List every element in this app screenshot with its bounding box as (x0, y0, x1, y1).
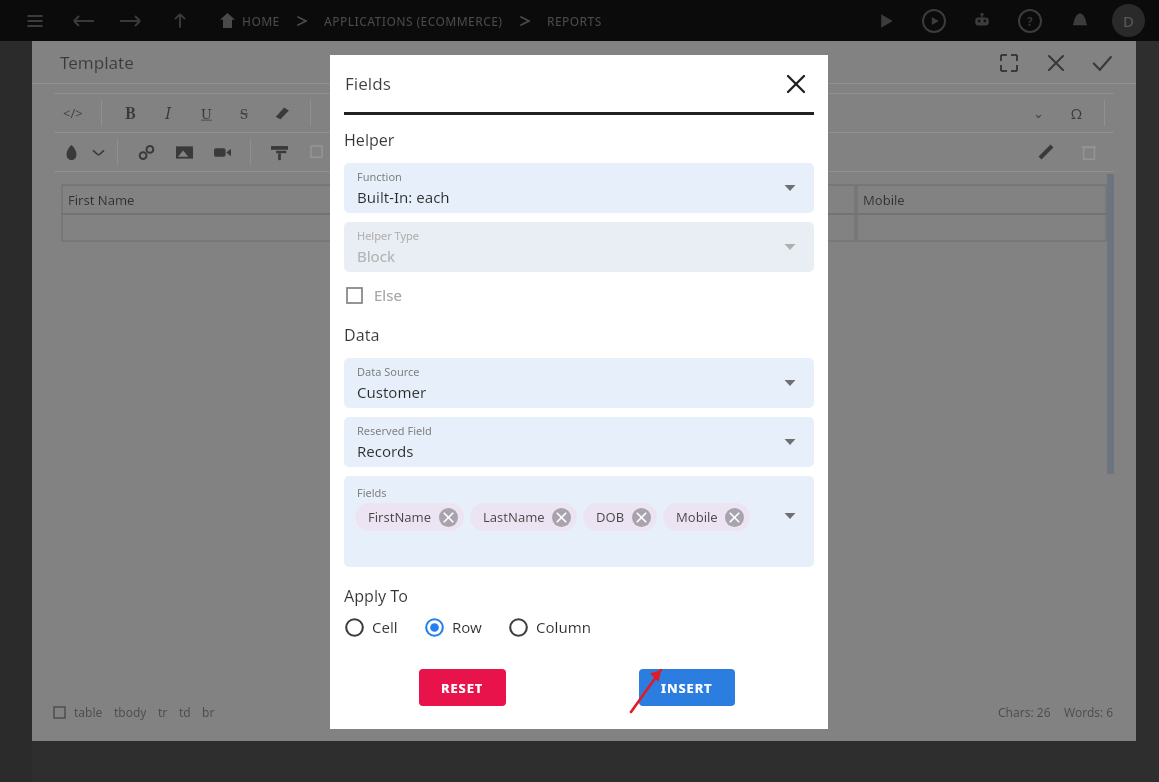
button[interactable]: Reserved Field (344, 417, 814, 467)
button[interactable]: Remove Mobile (725, 508, 744, 527)
button[interactable]: Clear format (263, 96, 301, 130)
staticText: Last Name (361, 191, 427, 209)
button[interactable]: Menu (22, 8, 48, 34)
button[interactable]: Function (344, 163, 814, 213)
staticText: Fields (357, 485, 387, 500)
staticText: Words: 6 (1064, 704, 1114, 720)
staticText: Helper Type (357, 228, 420, 243)
button[interactable]: Fields (344, 476, 814, 567)
button[interactable]: Play video (922, 9, 946, 33)
staticText: Row (452, 617, 482, 637)
button[interactable]: </> (54, 96, 92, 130)
button[interactable]: Remove DOB (632, 508, 651, 527)
staticText: Function (357, 169, 402, 184)
staticText: DOB (596, 508, 625, 526)
button[interactable]: Close dialog (784, 72, 808, 96)
staticText: Helper (344, 129, 395, 151)
staticText: HOME (242, 13, 280, 29)
button[interactable]: Ω (1057, 96, 1095, 130)
button[interactable]: APPLICATIONS (ECOMMERCE) (324, 13, 503, 29)
button[interactable]: Cell (345, 617, 402, 637)
staticText: Ω (1071, 103, 1082, 123)
staticText: table (74, 704, 103, 720)
button[interactable]: Forward (118, 9, 142, 33)
staticText: LastName (483, 508, 545, 526)
button[interactable]: B (111, 96, 149, 130)
button[interactable]: ⌄ (1019, 96, 1057, 130)
staticText: </> (63, 104, 83, 122)
button[interactable]: Fullscreen (996, 50, 1022, 76)
button[interactable]: Assistant (970, 9, 994, 33)
button[interactable]: INSERT (639, 669, 735, 706)
button[interactable]: Profile (1112, 4, 1145, 37)
staticText: RESET (441, 679, 484, 697)
staticText: br (202, 704, 215, 720)
staticText: Records (357, 441, 414, 461)
staticText: APPLICATIONS (ECOMMERCE) (324, 13, 503, 29)
staticText: Else (374, 285, 402, 305)
staticText: ⌄ (1033, 106, 1044, 121)
staticText: First Name (68, 191, 135, 209)
button[interactable]: Helper Type (344, 222, 814, 272)
button[interactable]: Save (1090, 51, 1114, 75)
button[interactable]: S (225, 96, 263, 130)
button[interactable]: Up (168, 9, 192, 33)
staticText: Mobile (863, 191, 905, 209)
staticText: x² (332, 104, 346, 123)
staticText: B (125, 102, 136, 124)
button[interactable]: Else (344, 285, 402, 305)
button[interactable]: Image (165, 135, 203, 169)
button[interactable]: Edit (1036, 142, 1056, 162)
staticText: Customer (357, 382, 427, 402)
staticText: Apply To (344, 585, 408, 607)
button[interactable]: Column (509, 617, 595, 637)
staticText: td (179, 704, 191, 720)
button[interactable]: Help (1018, 9, 1042, 33)
button[interactable]: Remove FirstName (439, 508, 458, 527)
staticText: INSERT (661, 679, 713, 697)
button[interactable]: Video (203, 135, 241, 169)
button[interactable]: LastName (470, 503, 577, 531)
staticText: REPORTS (547, 13, 602, 29)
button[interactable]: Remove LastName (552, 508, 571, 527)
button[interactable]: Paint format (260, 135, 298, 169)
staticText: U (201, 103, 212, 123)
staticText: Block (357, 246, 395, 266)
button[interactable]: HOME (242, 13, 280, 29)
button[interactable]: RESET (419, 669, 506, 706)
button[interactable]: Link (127, 135, 165, 169)
button[interactable]: FirstName (355, 503, 464, 531)
staticText: tr (158, 704, 168, 720)
staticText: Chars: 26 (998, 704, 1051, 720)
button[interactable]: Close (1044, 51, 1068, 75)
button[interactable]: x² (320, 96, 358, 130)
staticText: FirstName (368, 508, 432, 526)
button[interactable]: I (149, 96, 187, 130)
button[interactable]: Color (54, 135, 88, 169)
staticText: Data Source (357, 364, 420, 379)
staticText: Reserved Field (357, 423, 432, 438)
staticText: tbody (114, 704, 147, 720)
button[interactable]: REPORTS (547, 13, 602, 29)
staticText: D (1123, 11, 1134, 31)
staticText: S (240, 103, 249, 123)
staticText: I (165, 102, 171, 124)
staticText: Fields (345, 72, 391, 95)
button[interactable]: Data Source (344, 358, 814, 408)
button[interactable]: Run (874, 9, 898, 33)
button[interactable]: DOB (583, 503, 657, 531)
staticText: Built-In: each (357, 187, 450, 207)
button[interactable]: U (187, 96, 225, 130)
button[interactable]: Row (425, 617, 486, 637)
staticText: Mobile (676, 508, 718, 526)
staticText: Template (60, 51, 134, 74)
staticText: Cell (372, 617, 398, 637)
staticText: Data (344, 324, 380, 346)
button[interactable]: Back (72, 9, 96, 33)
button[interactable]: Mobile (663, 503, 750, 531)
button[interactable]: Notifications (1068, 9, 1092, 33)
staticText: ? (1027, 13, 1033, 29)
staticText: Column (536, 617, 591, 637)
